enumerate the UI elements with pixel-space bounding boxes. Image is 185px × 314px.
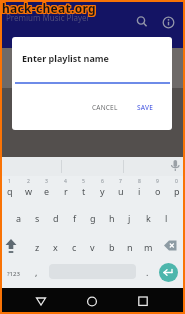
button[interactable]: d: [46, 206, 65, 230]
staticText: hack-cheat.org: [3, 0, 97, 16]
button[interactable]: h: [102, 206, 121, 230]
staticText: SAVE: [137, 103, 153, 112]
staticText: a: [16, 212, 22, 224]
button[interactable]: l: [157, 206, 176, 230]
button[interactable]: e: [37, 180, 56, 202]
button[interactable]: c: [65, 235, 84, 259]
button[interactable]: i: [130, 180, 149, 202]
staticText: o: [155, 185, 161, 197]
button[interactable]: s: [28, 206, 47, 230]
staticText: j: [128, 212, 131, 224]
staticText: z: [35, 241, 40, 253]
staticText: g: [90, 212, 96, 224]
staticText: h: [109, 212, 115, 224]
staticText: t: [82, 185, 86, 197]
button[interactable]: b: [102, 235, 121, 259]
staticText: 4: [64, 178, 67, 185]
staticText: p: [174, 185, 180, 197]
button[interactable]: p: [167, 180, 185, 202]
staticText: hack-cheat.org: [1, 0, 95, 16]
staticText: Enter playlist name: [22, 52, 109, 64]
staticText: d: [53, 212, 59, 224]
staticText: m: [144, 241, 153, 253]
button[interactable]: [162, 16, 175, 29]
staticText: q: [7, 185, 13, 197]
staticText: v: [90, 241, 95, 253]
staticText: ,: [35, 266, 38, 278]
staticText: CANCEL: [92, 103, 118, 112]
staticText: hack-cheat.org: [3, 1, 97, 17]
staticText: hack-cheat.org: [1, 1, 95, 17]
button[interactable]: SAVE: [126, 97, 164, 117]
button[interactable]: r: [56, 180, 75, 202]
staticText: hack-cheat.org: [3, 0, 97, 15]
button[interactable]: [2, 235, 22, 259]
staticText: 3: [45, 178, 48, 185]
button[interactable]: n: [120, 235, 139, 259]
button[interactable]: y: [93, 180, 112, 202]
button[interactable]: [133, 291, 153, 311]
button[interactable]: [31, 291, 51, 311]
button[interactable]: q: [0, 180, 19, 202]
button[interactable]: j: [120, 206, 139, 230]
button[interactable]: .: [139, 260, 155, 284]
button[interactable]: [82, 291, 102, 311]
staticText: x: [53, 241, 58, 253]
button[interactable]: m: [139, 235, 158, 259]
staticText: c: [72, 241, 77, 253]
button[interactable]: o: [148, 180, 167, 202]
staticText: ?123: [7, 270, 20, 278]
staticText: e: [44, 185, 50, 197]
staticText: 5: [82, 178, 85, 185]
staticText: u: [118, 185, 124, 197]
button[interactable]: g: [83, 206, 102, 230]
button[interactable]: [134, 13, 150, 29]
staticText: hack-cheat.org: [2, 0, 96, 15]
staticText: 0: [175, 178, 178, 185]
button[interactable]: x: [46, 235, 65, 259]
staticText: 2: [27, 178, 30, 185]
button[interactable]: f: [65, 206, 84, 230]
button[interactable]: t: [74, 180, 93, 202]
button[interactable]: ,: [28, 260, 44, 284]
button[interactable]: [159, 263, 178, 282]
staticText: hack-cheat.org: [2, 1, 96, 17]
staticText: Premium Music Player: [6, 12, 90, 23]
button[interactable]: CANCEL: [81, 97, 129, 117]
button[interactable]: [161, 235, 183, 259]
button[interactable]: k: [139, 206, 158, 230]
staticText: w: [25, 185, 33, 197]
staticText: 8: [138, 178, 141, 185]
staticText: y: [100, 185, 105, 197]
staticText: i: [138, 185, 141, 197]
staticText: 6: [101, 178, 104, 185]
button[interactable]: ?123: [0, 262, 26, 286]
staticText: k: [146, 212, 151, 224]
button[interactable]: a: [9, 206, 28, 230]
staticText: .: [146, 266, 149, 278]
staticText: s: [35, 212, 40, 224]
button[interactable]: z: [28, 235, 47, 259]
staticText: 1: [8, 178, 11, 185]
staticText: 7: [119, 178, 122, 185]
button[interactable]: w: [19, 180, 38, 202]
staticText: hack-cheat.org: [1, 0, 95, 15]
staticText: 9: [156, 178, 159, 185]
staticText: hack-cheat.org: [2, 0, 96, 16]
staticText: f: [73, 212, 77, 224]
staticText: n: [127, 241, 133, 253]
button[interactable]: v: [83, 235, 102, 259]
button[interactable]: u: [111, 180, 130, 202]
staticText: r: [64, 185, 68, 197]
staticText: b: [109, 241, 115, 253]
staticText: l: [165, 212, 168, 224]
